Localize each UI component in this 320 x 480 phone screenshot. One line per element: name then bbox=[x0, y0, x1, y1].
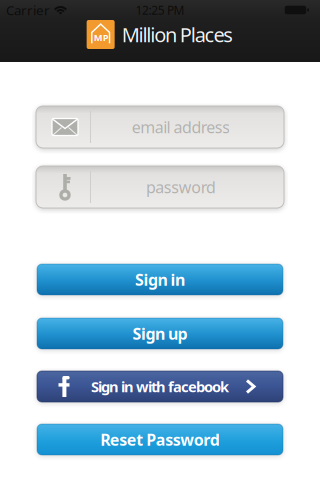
staticText: Carrier bbox=[6, 1, 50, 19]
staticText: 12:25 PM bbox=[135, 2, 185, 18]
staticText: password bbox=[146, 176, 216, 198]
button[interactable]: password bbox=[36, 166, 284, 208]
staticText: Reset Password bbox=[100, 429, 220, 450]
staticText: Sign in with facebook bbox=[91, 377, 229, 396]
staticText: email address bbox=[132, 116, 230, 138]
staticText: Sign up bbox=[132, 323, 187, 344]
button[interactable]: Sign in with facebook bbox=[37, 371, 283, 402]
staticText: Sign in bbox=[135, 269, 185, 290]
button[interactable]: Sign in bbox=[37, 264, 283, 295]
button[interactable]: Sign up bbox=[37, 318, 283, 349]
button[interactable]: Reset Password bbox=[37, 424, 283, 455]
button[interactable]: email address bbox=[36, 106, 284, 148]
staticText: MP bbox=[94, 31, 109, 44]
staticText: Million Places bbox=[122, 21, 233, 48]
